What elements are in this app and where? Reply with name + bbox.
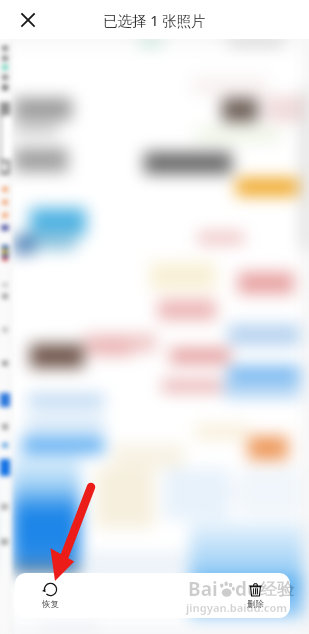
button[interactable]: 恢复 xyxy=(15,573,85,618)
staticText: Bai xyxy=(188,576,218,602)
staticText: 已选择 1 张照片 xyxy=(103,10,206,30)
staticText: du xyxy=(235,576,260,602)
staticText: 删除 xyxy=(247,599,264,610)
staticText: 恢复 xyxy=(42,599,59,610)
button[interactable]: 删除 xyxy=(220,573,290,618)
staticText: 经验 xyxy=(260,579,294,600)
button[interactable]: Close xyxy=(0,0,55,39)
staticText: jingyan.baidu.com xyxy=(186,600,288,615)
